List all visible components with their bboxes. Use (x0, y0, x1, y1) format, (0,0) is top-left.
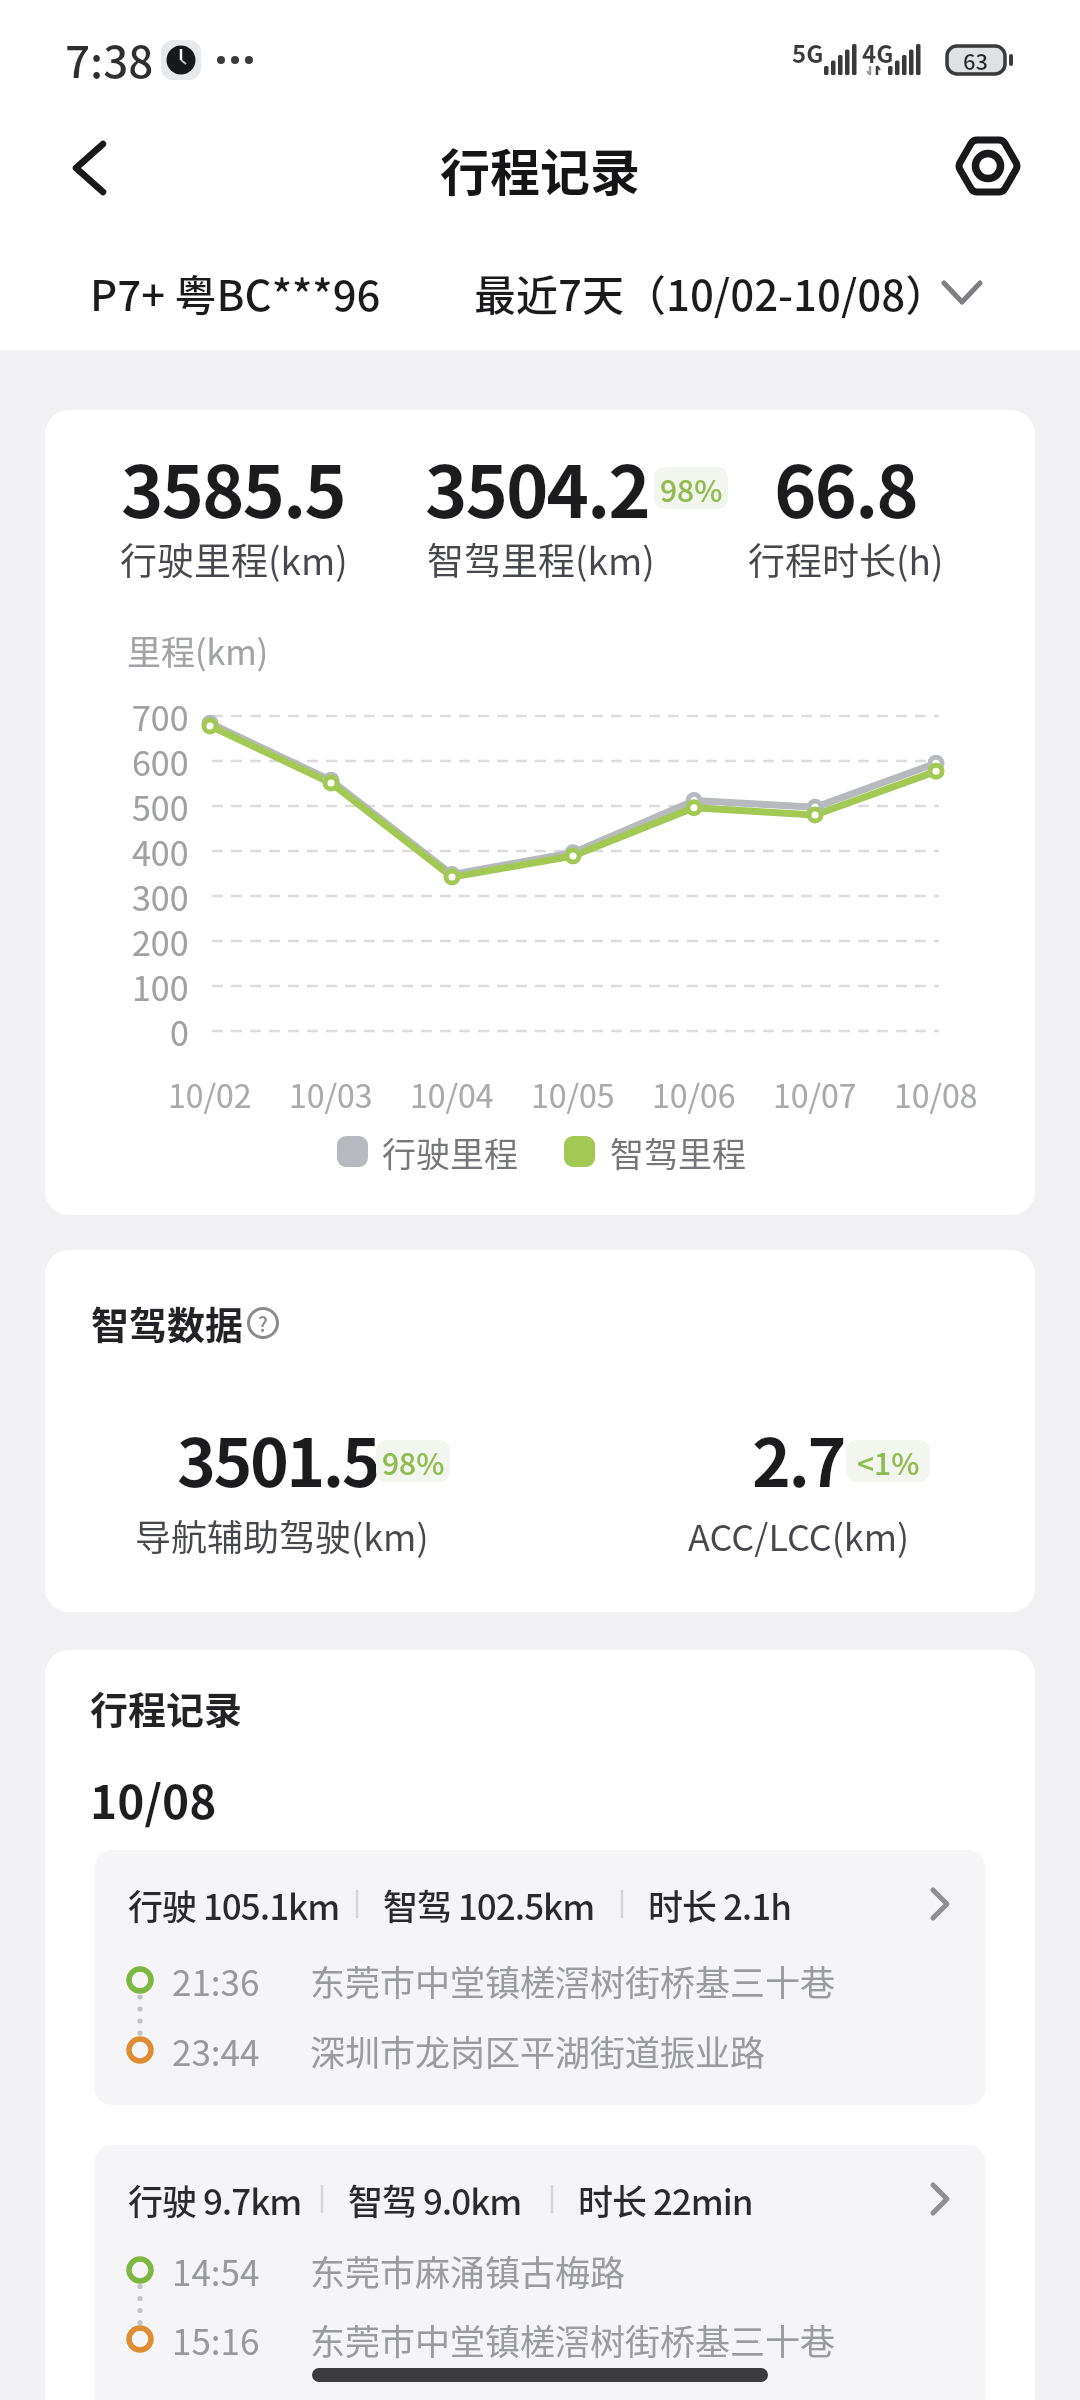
staticText: 里程(km) (127, 626, 269, 675)
staticText: ACC/LCC(km) (688, 1509, 910, 1561)
button[interactable] (948, 126, 1028, 206)
button[interactable]: 行驶 105.1km (95, 1850, 985, 2105)
staticText: 14:54 (172, 2245, 260, 2296)
staticText: 66.8 (774, 434, 917, 538)
staticText: ? (258, 1309, 268, 1338)
staticText: 智驾数据 (91, 1295, 244, 1350)
staticText: 行程记录 (90, 1680, 243, 1735)
staticText: 300 (132, 872, 189, 921)
button[interactable]: ? (246, 1306, 280, 1340)
staticText: 10/02 (168, 1071, 252, 1117)
staticText: 行程记录 (440, 133, 640, 205)
button[interactable] (50, 125, 136, 211)
staticText: 行程时长(h) (748, 532, 944, 586)
staticText: 3504.2 (425, 434, 649, 538)
staticText: 4G (862, 35, 894, 70)
staticText: 15:16 (172, 2314, 260, 2365)
staticText: 200 (132, 917, 189, 966)
staticText: 500 (132, 782, 189, 831)
staticText: 智驾 9.0km (348, 2174, 522, 2225)
staticText: 行驶里程 (382, 1128, 518, 1177)
staticText: 10/07 (773, 1071, 857, 1117)
staticText: 10/04 (410, 1071, 494, 1117)
staticText: 3585.5 (121, 434, 345, 538)
staticText: 东莞市中堂镇槎滘树街桥基三十巷 (310, 2314, 836, 2365)
staticText: 3501.5 (177, 1410, 379, 1506)
staticText: 400 (132, 827, 189, 876)
staticText: 行驶 105.1km (128, 1879, 340, 1930)
staticText: 100 (132, 962, 189, 1011)
staticText: 0 (170, 1007, 189, 1056)
staticText: 时长 22min (578, 2174, 753, 2225)
staticText: 10/08 (894, 1071, 978, 1117)
staticText: 时长 2.1h (648, 1879, 791, 1930)
staticText: 98% (382, 1440, 445, 1482)
staticText: 10/06 (652, 1071, 736, 1117)
staticText: <1% (857, 1440, 920, 1482)
staticText: 智驾里程 (610, 1128, 746, 1177)
staticText: 10/03 (289, 1071, 373, 1117)
staticText: 东莞市麻涌镇古梅路 (310, 2245, 626, 2296)
staticText: P7+ 粤BC***96 (90, 262, 381, 323)
staticText: 行驶里程(km) (120, 532, 348, 586)
staticText: 10/08 (90, 1766, 217, 1833)
staticText: 7:38 (65, 27, 154, 91)
staticText: 东莞市中堂镇槎滘树街桥基三十巷 (310, 1955, 836, 2006)
staticText: 600 (132, 737, 189, 786)
button[interactable]: 行驶 9.7km (95, 2145, 985, 2400)
staticText: 2.7 (752, 1410, 844, 1506)
staticText: 21:36 (172, 1955, 260, 2006)
staticText: 10/05 (531, 1071, 615, 1117)
button[interactable]: P7+ 粤BC***96 (0, 245, 1080, 340)
staticText: 最近7天（10/02-10/08） (474, 262, 948, 323)
staticText: 98% (660, 467, 723, 509)
staticText: 深圳市龙岗区平湖街道振业路 (310, 2025, 766, 2076)
staticText: 导航辅助驾驶(km) (135, 1509, 429, 1561)
staticText: 63 (963, 44, 989, 76)
staticText: 23:44 (172, 2025, 260, 2076)
staticText: 700 (132, 692, 189, 741)
staticText: 行驶 9.7km (128, 2174, 302, 2225)
staticText: 智驾 102.5km (383, 1879, 595, 1930)
staticText: 智驾里程(km) (427, 532, 655, 586)
staticText: 5G (792, 35, 824, 70)
